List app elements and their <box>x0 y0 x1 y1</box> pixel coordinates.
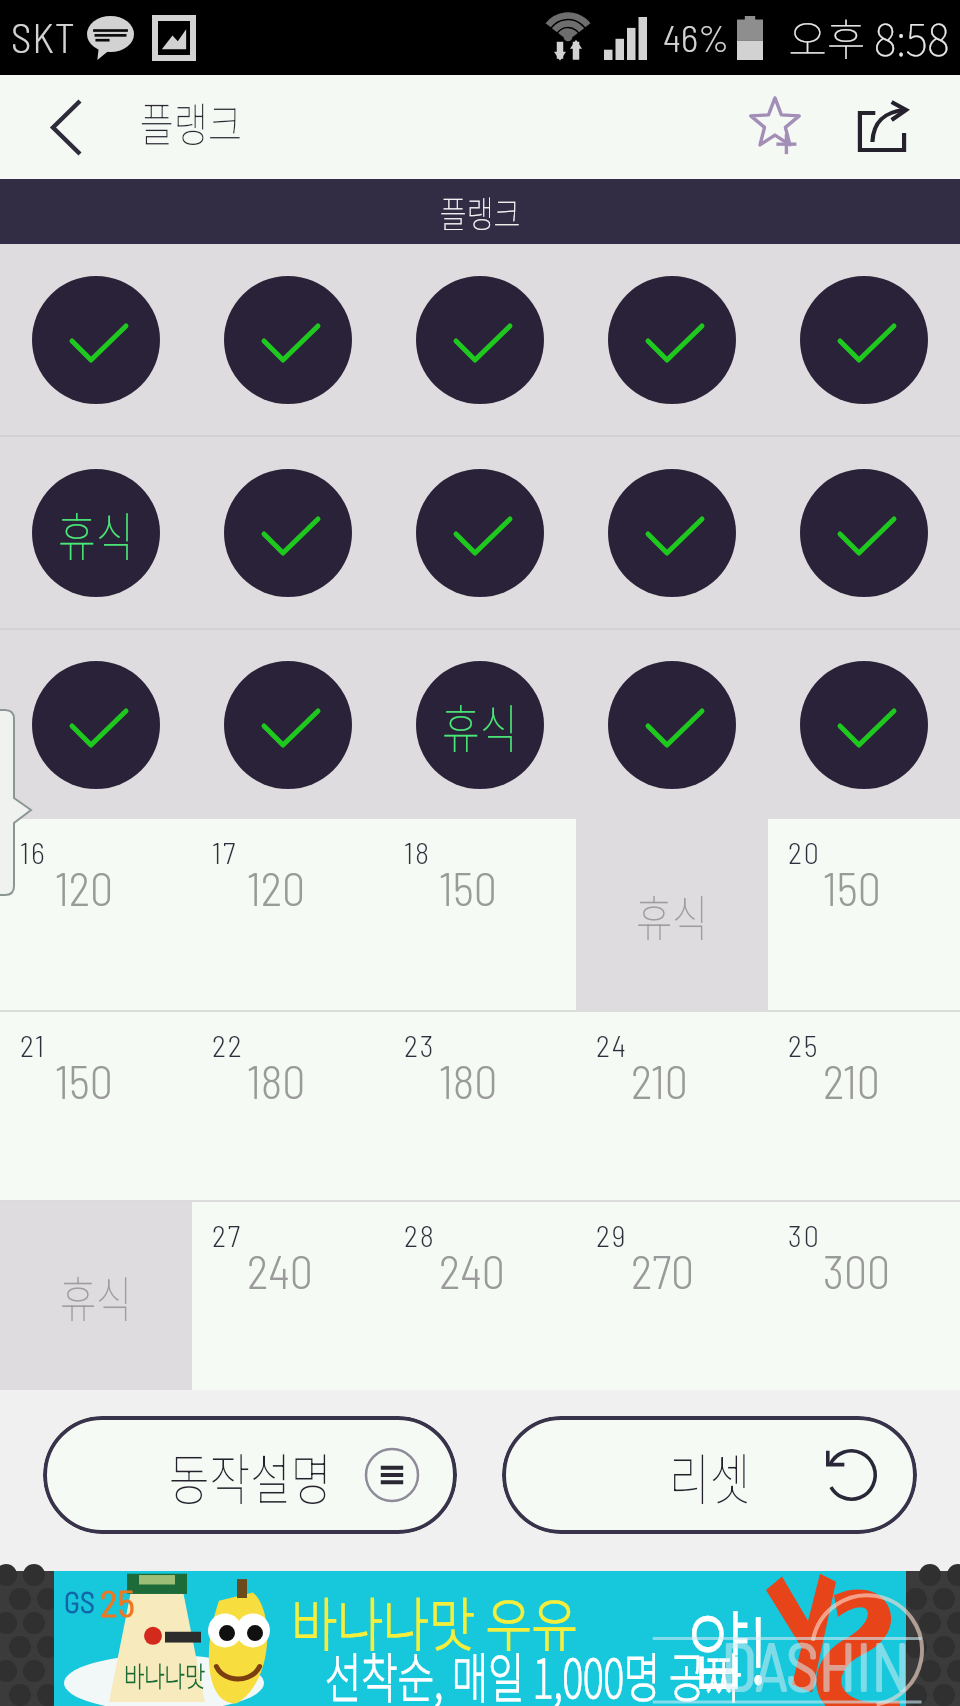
staticText: 바나나맛 <box>124 1655 206 1696</box>
staticText: 리셋 <box>669 1435 751 1516</box>
button[interactable]: 휴식 <box>576 819 768 1010</box>
staticText: 휴식 <box>636 879 708 951</box>
button[interactable] <box>768 244 960 435</box>
staticText: DASHIN <box>721 1625 910 1704</box>
staticText: 선착순, 매일 1,000명 공짜 <box>325 1635 742 1706</box>
staticText: 얍! <box>687 1583 768 1706</box>
staticText: 휴식 <box>60 1260 132 1332</box>
staticText: 210 <box>631 1053 688 1108</box>
button[interactable] <box>192 437 384 628</box>
button[interactable] <box>384 244 576 435</box>
button[interactable]: Back <box>0 75 118 179</box>
staticText: 동작설명 <box>169 1435 332 1516</box>
button[interactable]: 18 <box>384 819 576 1010</box>
staticText: 플랭크 <box>140 87 242 155</box>
button[interactable] <box>0 244 192 435</box>
staticText: 150 <box>439 860 497 915</box>
staticText: 23 <box>404 1027 436 1063</box>
staticText: 46% <box>663 14 730 60</box>
button[interactable]: 30 <box>768 1202 960 1390</box>
button[interactable] <box>384 437 576 628</box>
button[interactable] <box>192 630 384 819</box>
staticText: 20 <box>788 834 821 870</box>
staticText: 16 <box>20 834 47 870</box>
button[interactable] <box>0 630 192 819</box>
staticText: 210 <box>823 1053 880 1108</box>
button[interactable]: 28 <box>384 1202 576 1390</box>
staticText: 30 <box>788 1217 821 1253</box>
staticText: 180 <box>247 1053 306 1108</box>
staticText: 플랭크 <box>440 185 521 239</box>
staticText: 22 <box>212 1027 244 1063</box>
staticText: 28 <box>404 1217 436 1253</box>
staticText: 바나나맛 우유 <box>291 1579 578 1663</box>
staticText: 휴식 <box>58 496 134 571</box>
staticText: 휴식 <box>442 688 518 763</box>
button[interactable] <box>576 437 768 628</box>
staticText: 27 <box>212 1217 243 1253</box>
button[interactable]: 22 <box>192 1012 384 1200</box>
staticText: 오후 8:58 <box>788 5 950 69</box>
staticText: 300 <box>823 1243 891 1298</box>
button[interactable] <box>192 244 384 435</box>
staticText: SKT <box>11 12 76 61</box>
button[interactable]: 25 <box>768 1012 960 1200</box>
staticText: 25 <box>100 1579 135 1625</box>
staticText: 240 <box>247 1243 313 1298</box>
staticText: 150 <box>823 860 881 915</box>
button[interactable]: 27 <box>192 1202 384 1390</box>
button[interactable] <box>768 437 960 628</box>
button[interactable]: 17 <box>192 819 384 1010</box>
staticText: 21 <box>20 1027 46 1063</box>
button[interactable]: 29 <box>576 1202 768 1390</box>
button[interactable] <box>576 630 768 819</box>
staticText: 120 <box>55 860 114 915</box>
button[interactable] <box>576 244 768 435</box>
staticText: 120 <box>247 860 306 915</box>
button[interactable]: 24 <box>576 1012 768 1200</box>
button[interactable]: 휴식 <box>0 437 192 628</box>
staticText: 270 <box>631 1243 695 1298</box>
staticText: 24 <box>596 1027 628 1063</box>
button[interactable]: 동작설명 <box>43 1416 457 1534</box>
staticText: GS <box>64 1583 95 1619</box>
button[interactable] <box>768 630 960 819</box>
button[interactable]: 21 <box>0 1012 192 1200</box>
staticText: 29 <box>596 1217 628 1253</box>
button[interactable]: 리셋 <box>502 1416 917 1534</box>
staticText: 25 <box>788 1027 820 1063</box>
button[interactable]: Share <box>828 75 936 179</box>
staticText: 180 <box>439 1053 498 1108</box>
button[interactable]: Favorite <box>724 75 828 179</box>
button[interactable]: 16 <box>0 819 192 1010</box>
staticText: 17 <box>212 834 238 870</box>
button[interactable]: 20 <box>768 819 960 1010</box>
staticText: 240 <box>439 1243 505 1298</box>
button[interactable]: 23 <box>384 1012 576 1200</box>
button[interactable]: 휴식 <box>0 1202 192 1390</box>
staticText: 18 <box>404 834 431 870</box>
staticText: 150 <box>55 1053 113 1108</box>
button[interactable]: 휴식 <box>384 630 576 819</box>
